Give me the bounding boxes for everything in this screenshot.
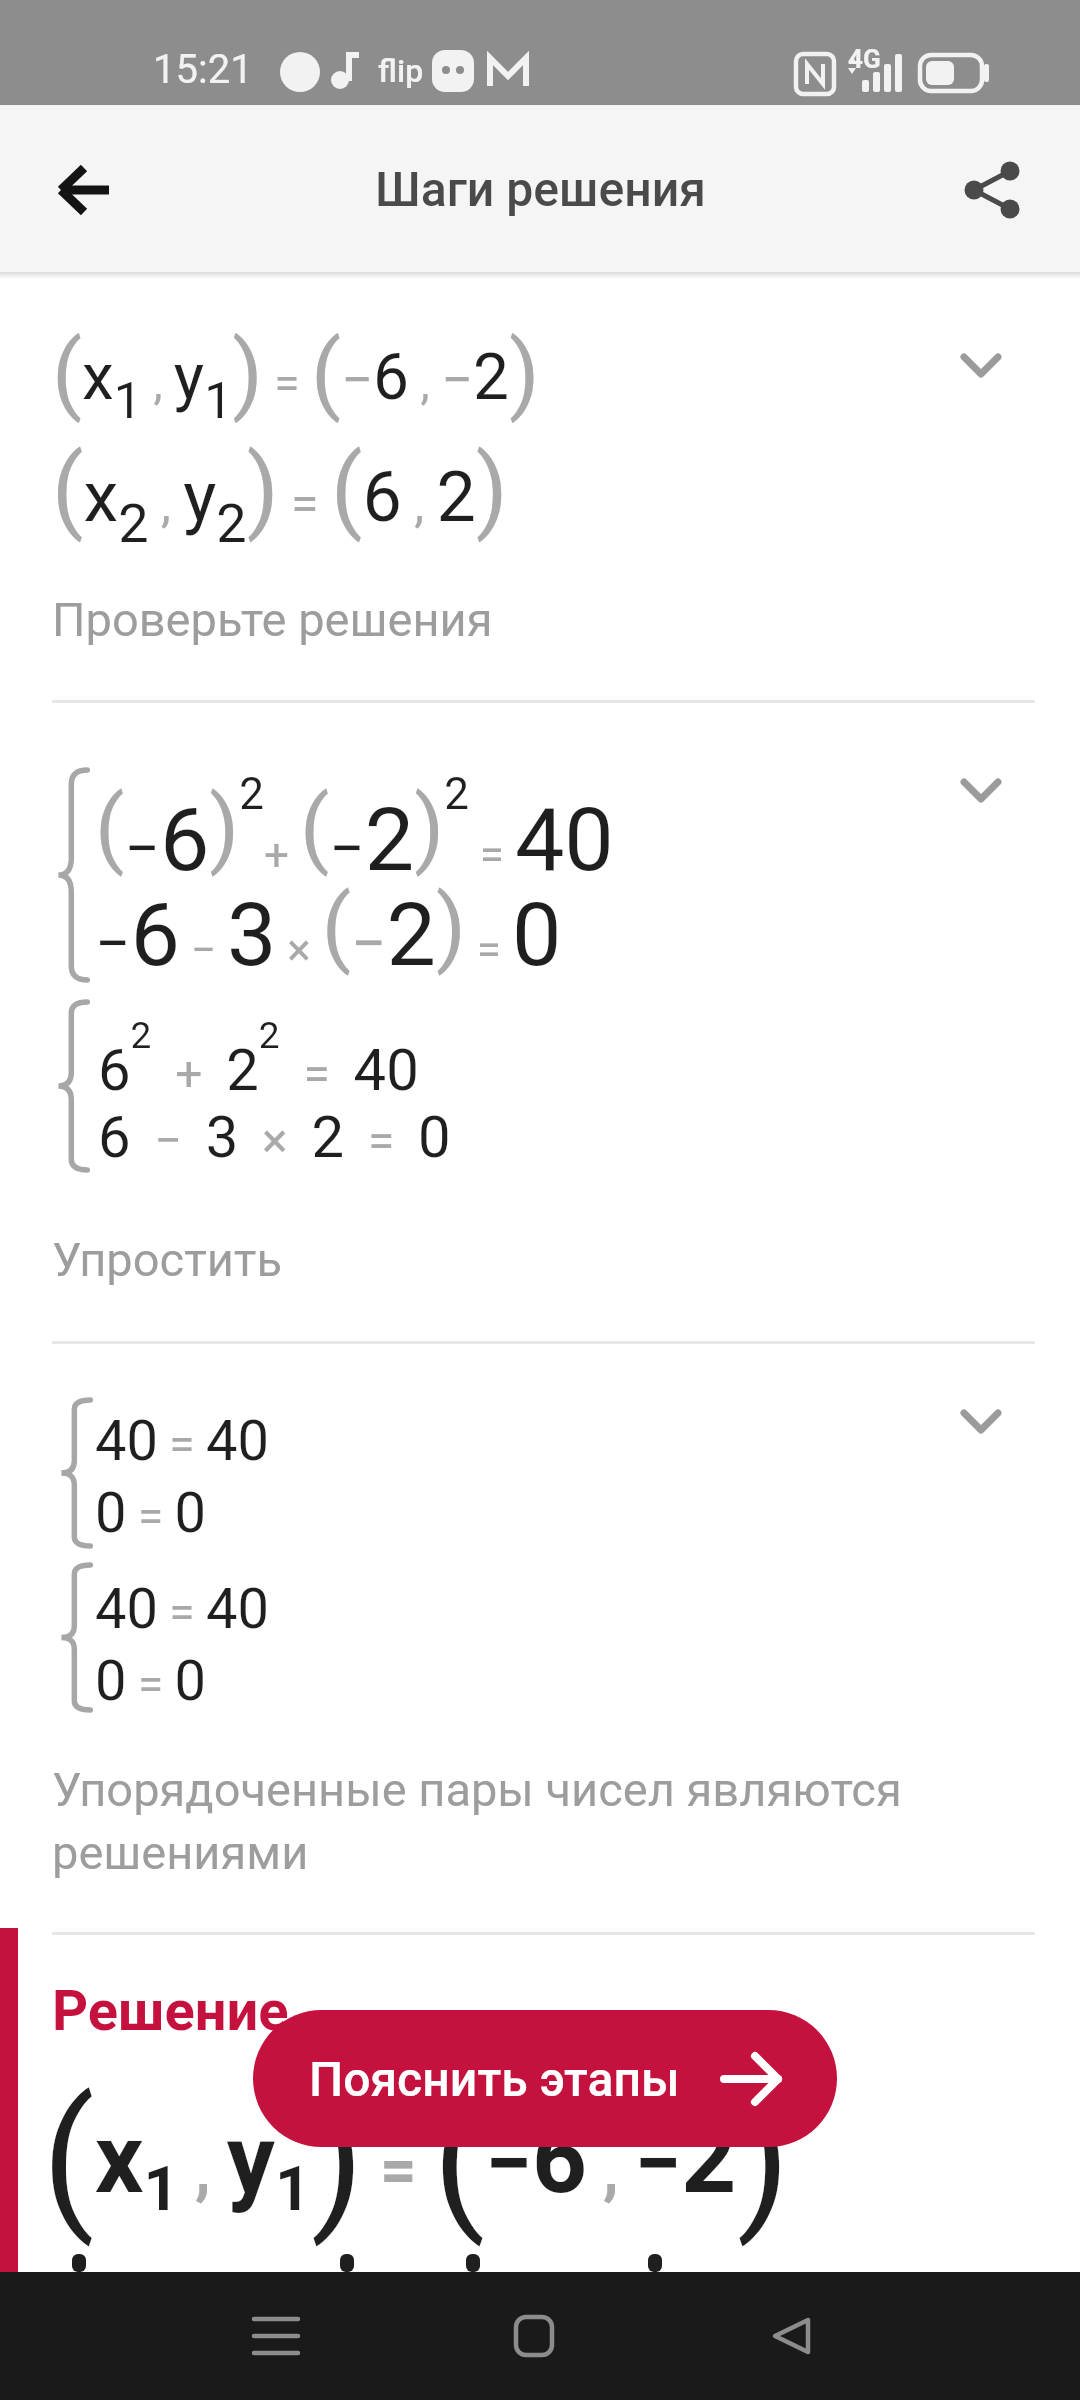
staticText: flip xyxy=(378,52,424,90)
staticText: 15:21 xyxy=(153,46,253,93)
staticText: 4G xyxy=(848,44,881,74)
staticText: Решение xyxy=(52,1978,289,2044)
staticText: Проверьте решения xyxy=(52,592,493,647)
button[interactable] xyxy=(938,1387,1024,1457)
button[interactable] xyxy=(40,145,130,235)
staticText: 0 = 0 xyxy=(95,1648,207,1714)
button[interactable] xyxy=(942,145,1042,235)
button[interactable] xyxy=(474,2272,594,2400)
button[interactable] xyxy=(938,756,1024,826)
staticText: Упорядоченные пары чисел являются решени… xyxy=(52,1762,902,1880)
staticText: Шаги решения xyxy=(375,161,706,217)
staticText: (x1 , y1) = (−6 , −2) xyxy=(42,2068,790,2248)
staticText: −6 − 3 × (−2) = 0 xyxy=(95,876,562,987)
staticText: (−6)2+ (−2)2 = 40 xyxy=(95,768,614,892)
staticText: Упростить xyxy=(52,1232,282,1287)
button[interactable]: Пояснить этапы xyxy=(253,2010,837,2147)
button[interactable] xyxy=(938,331,1024,401)
staticText: Пояснить этапы xyxy=(309,2051,680,2107)
staticText: 40 = 40 xyxy=(95,1576,269,1642)
button[interactable] xyxy=(216,2272,336,2400)
staticText: 40 = 40 xyxy=(95,1408,269,1474)
staticText: 6 − 3 × 2 = 0 xyxy=(98,1103,451,1171)
staticText: (x1 , y1) = (−6 , −2) xyxy=(52,321,540,430)
button[interactable] xyxy=(732,2272,852,2400)
staticText: 62 + 22 = 40 xyxy=(98,1014,419,1104)
staticText: (x2 , y2) = (6 , 2) xyxy=(52,436,508,555)
staticText: 0 = 0 xyxy=(95,1480,207,1546)
